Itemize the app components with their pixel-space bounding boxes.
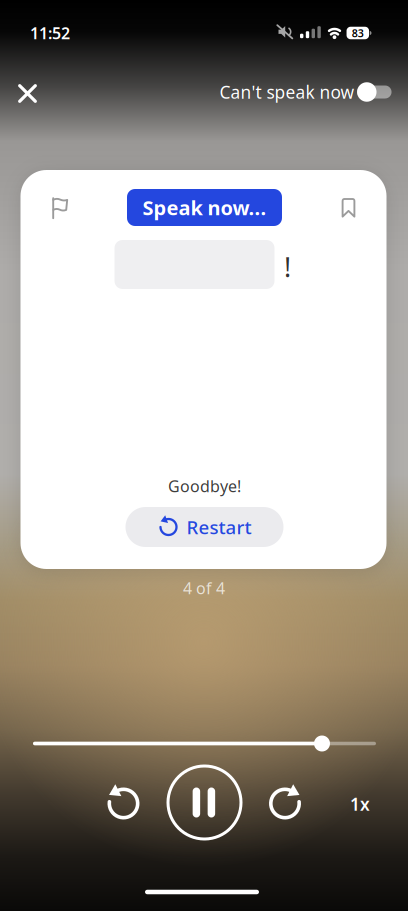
staticText: 1x (350, 792, 370, 815)
staticText: ! (284, 249, 291, 285)
button[interactable]: Speak now (127, 189, 282, 226)
button[interactable]: Playback speed (340, 784, 380, 824)
button[interactable]: Next (266, 784, 304, 822)
button[interactable]: Close (9, 75, 45, 111)
button[interactable]: Report (48, 196, 72, 220)
staticText: Can't speak now (219, 80, 354, 103)
staticText: Goodbye! (168, 475, 241, 497)
staticText: 83 (352, 26, 364, 40)
staticText: 11:52 (30, 22, 70, 44)
button[interactable]: Restart (125, 507, 283, 547)
button[interactable]: Can't speak now (357, 82, 392, 102)
button[interactable]: Bookmark (336, 196, 360, 220)
staticText: Speak now... (142, 194, 266, 221)
button[interactable]: Previous (104, 784, 142, 822)
staticText: 4 of 4 (183, 577, 225, 599)
button[interactable]: Pause (166, 764, 242, 840)
staticText: Restart (186, 515, 251, 539)
